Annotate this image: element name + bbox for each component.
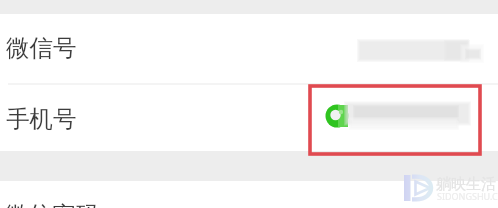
staticText: 微信密码 [5,200,99,208]
button[interactable]: 微信号 [0,14,498,83]
button[interactable]: 手机号 [0,85,498,151]
button[interactable]: 微信密码 [0,181,498,208]
staticText: 躺映生活 [436,175,496,194]
staticText: SIDONGSHU.COM [437,190,498,202]
staticText: 微信号 [6,33,77,63]
staticText: 手机号 [6,104,77,134]
other: Highlighted phone number [308,84,482,156]
